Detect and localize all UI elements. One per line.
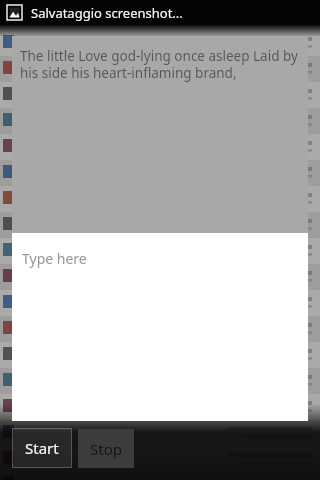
staticText: Salvataggio screenshot...: [31, 4, 183, 22]
staticText: Type here: [22, 249, 87, 268]
button[interactable]: Stop: [78, 429, 134, 468]
button[interactable]: Start: [12, 428, 72, 468]
button[interactable]: Type here: [12, 233, 308, 421]
staticText: Stop: [90, 439, 122, 459]
button[interactable]: Salvataggio screenshot...: [0, 0, 320, 25]
staticText: Start: [25, 438, 59, 458]
staticText: The little Love god-lying once asleep La…: [20, 47, 302, 82]
button[interactable]: The little Love god-lying once asleep La…: [12, 36, 308, 233]
